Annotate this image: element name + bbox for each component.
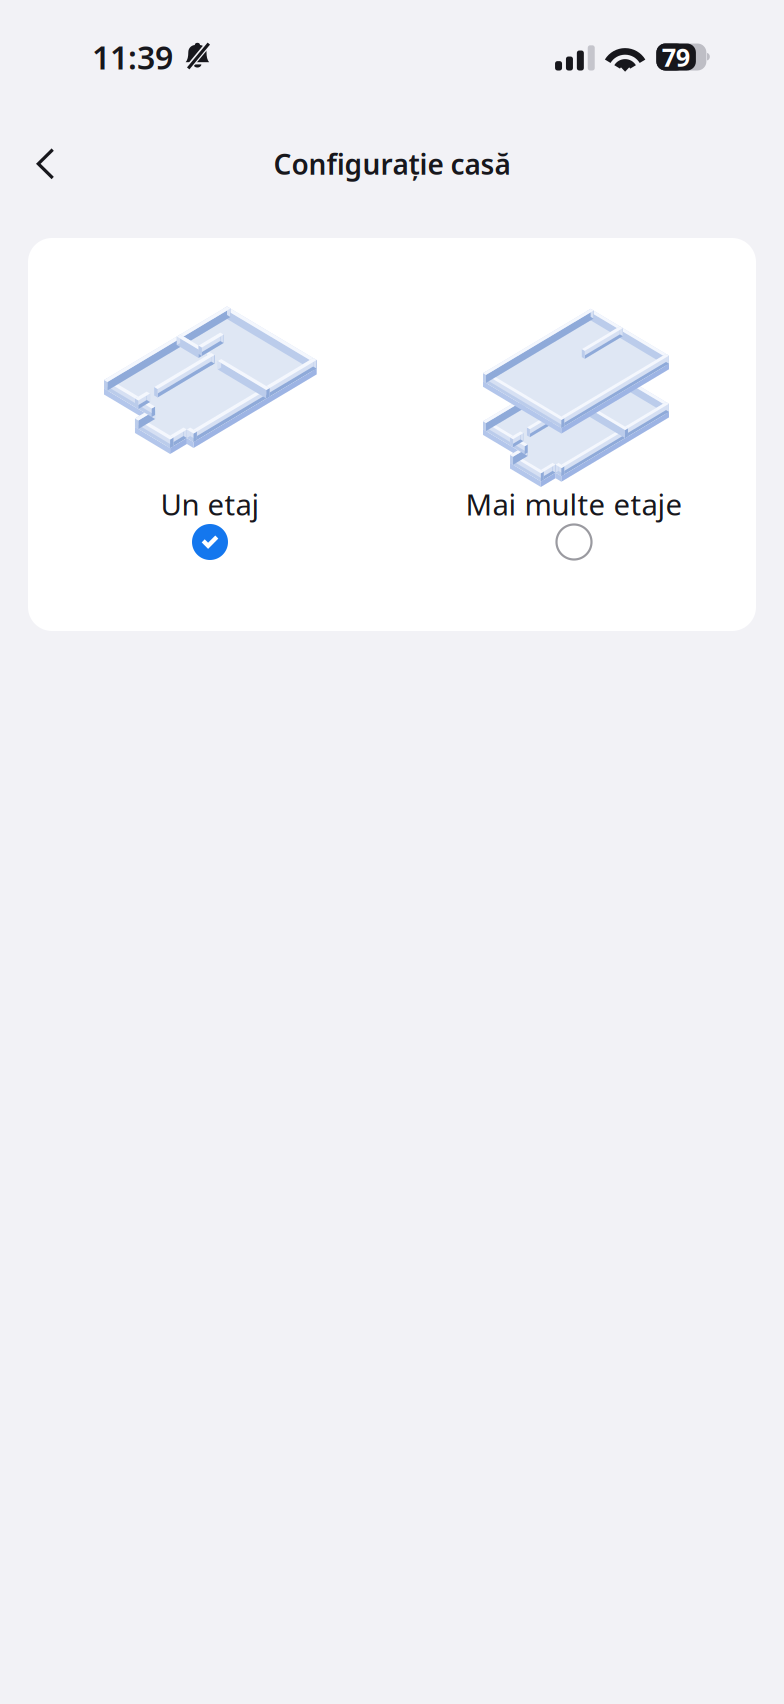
staticText: Mai multe etaje [465,484,682,523]
staticText: 11:39 [92,36,173,78]
staticText: Un etaj [160,484,259,523]
button[interactable]: Un etaj [28,286,392,560]
button[interactable]: Mai multe etaje [392,286,756,560]
staticText: 79 [662,40,690,74]
button[interactable]: Back [16,135,74,193]
staticText: Configurație casă [273,145,510,183]
